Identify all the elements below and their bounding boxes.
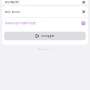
staticText: Uitloggen — [40, 34, 54, 38]
staticText: Mijn Auto's — [5, 10, 20, 13]
button[interactable]: Uitloggen — [4, 32, 86, 40]
button[interactable]: Voorkeuren — [2, 0, 88, 4]
staticText: App-versie 1.0.2 — [37, 47, 53, 50]
staticText: Invulhulp instellingen — [5, 21, 36, 25]
staticText: Voorkeuren — [5, 0, 19, 4]
button[interactable]: Mijn Auto's — [2, 6, 88, 17]
button[interactable]: Invulhulp instellingen — [2, 18, 88, 29]
